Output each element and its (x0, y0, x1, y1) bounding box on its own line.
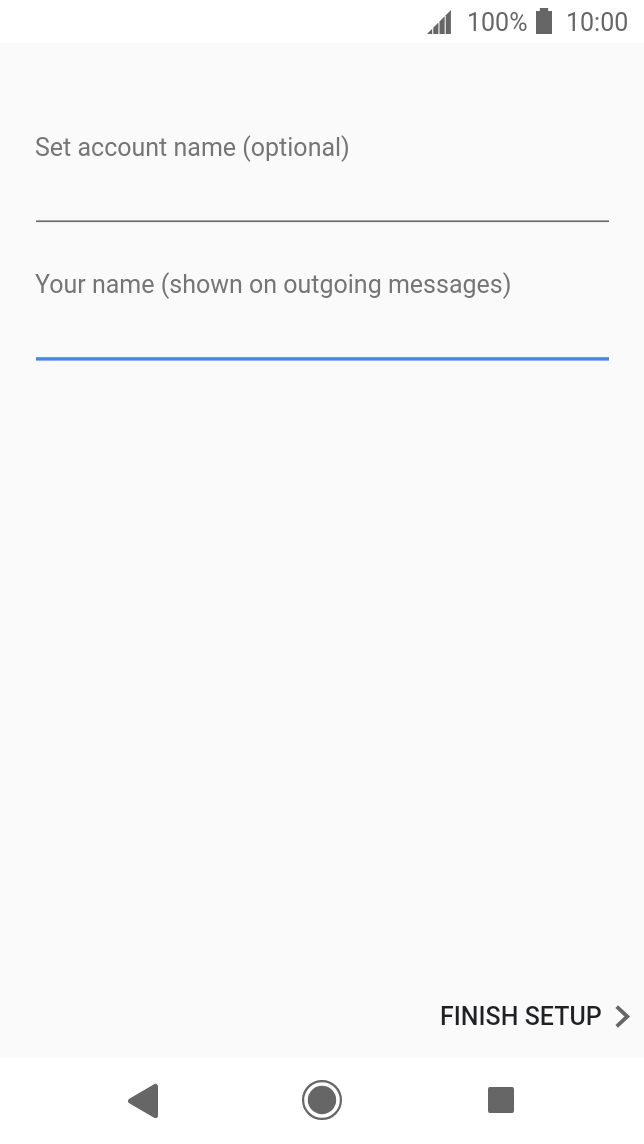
button[interactable]: Home (282, 1060, 362, 1140)
button[interactable]: Recent apps (461, 1060, 541, 1140)
button[interactable]: Back (103, 1061, 183, 1141)
staticText: Set account name (optional) (35, 133, 350, 162)
staticText: FINISH SETUP (440, 1002, 602, 1031)
button[interactable]: FINISH SETUP (424, 988, 644, 1045)
button[interactable]: Your name (shown on outgoing messages) (36, 262, 609, 361)
staticText: 10:00 (566, 8, 629, 37)
staticText: Your name (shown on outgoing messages) (35, 270, 512, 299)
staticText: 100% (467, 8, 528, 37)
button[interactable]: Set account name (optional) (36, 125, 609, 223)
